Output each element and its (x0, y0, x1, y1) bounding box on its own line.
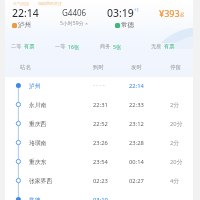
staticText: 起 (180, 12, 185, 18)
staticText: 03:19 (107, 6, 134, 20)
button[interactable]: 一等 (55, 43, 80, 50)
staticText: 2分 (170, 139, 180, 147)
staticText: 珞璜南 (29, 139, 47, 146)
button[interactable]: 永川南 (0, 95, 200, 114)
staticText: 商务 (100, 43, 111, 50)
staticText: 天气预报 (13, 1, 29, 6)
button[interactable]: 重庆东 (0, 152, 200, 171)
staticText: 5小时59分 (60, 20, 84, 27)
button[interactable]: 泸州 (0, 76, 200, 95)
staticText: 20分 (170, 120, 183, 128)
staticText: 永川南 (29, 101, 47, 108)
staticText: 22:52 (93, 120, 108, 128)
staticText: +1 (134, 7, 140, 13)
staticText: 20分 (170, 158, 183, 166)
staticText: 22:14 (12, 6, 39, 20)
staticText: 有票 (24, 43, 35, 50)
staticText: 站名 (20, 64, 31, 71)
staticText: 发时 (131, 64, 142, 71)
staticText: 张家界西 (29, 177, 53, 184)
staticText: 4分 (170, 177, 180, 185)
staticText: 02:23 (93, 177, 108, 185)
staticText: 22:14 (129, 82, 144, 90)
button[interactable]: 重庆西 (0, 114, 200, 133)
staticText: 无座 (151, 43, 162, 50)
staticText: 重庆西 (29, 120, 47, 127)
staticText: 常德 (29, 196, 41, 200)
button[interactable]: 常德 (115, 21, 134, 29)
staticText: 02:27 (129, 177, 144, 185)
staticText: 一等 (55, 43, 66, 50)
button[interactable]: 二等 (11, 43, 35, 50)
staticText: 23:26 (93, 139, 108, 147)
staticText: 5张 (113, 43, 122, 50)
staticText: 泸州 (18, 21, 31, 29)
staticText: 到时 (93, 64, 104, 71)
button[interactable]: 常德 (0, 190, 200, 200)
button[interactable]: 张家界西 (0, 171, 200, 190)
button[interactable]: ¥393 (159, 7, 185, 19)
staticText: 常德 (121, 21, 134, 29)
staticText: 停留 (170, 64, 181, 71)
staticText: 有票 (164, 43, 175, 50)
button[interactable]: 商务 (100, 43, 122, 50)
staticText: 22:33 (129, 101, 144, 109)
staticText: 22:31 (93, 101, 108, 109)
staticText: G4406 (62, 7, 87, 18)
staticText: 23:54 (93, 158, 108, 166)
staticText: 00:14 (129, 158, 144, 166)
staticText: 泸州 (29, 82, 41, 89)
staticText: 重庆东 (29, 158, 47, 165)
button[interactable]: 珞璜南 (0, 133, 200, 152)
staticText: 二等 (11, 43, 22, 50)
staticText: 2分 (170, 101, 180, 109)
staticText: 16张 (68, 43, 80, 50)
staticText: 编辑我的关注 (38, 1, 62, 6)
staticText: 23:28 (129, 139, 144, 147)
staticText: 23:12 (129, 120, 144, 128)
staticText: ¥393 (159, 7, 180, 19)
button[interactable]: 无座 (151, 43, 175, 50)
staticText: 03:19 (93, 196, 108, 200)
button[interactable]: 泸州 (12, 21, 31, 29)
